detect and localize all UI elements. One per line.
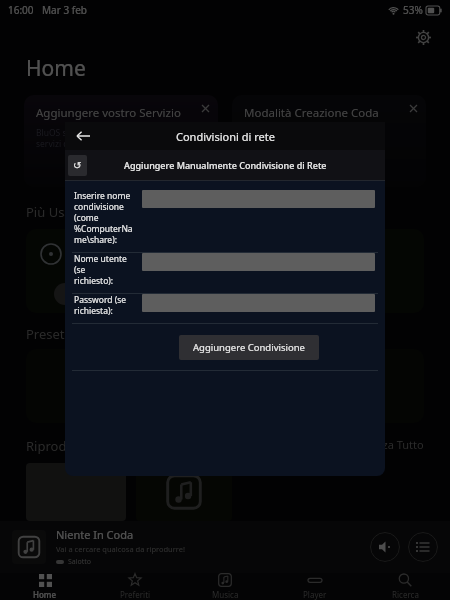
button[interactable]: Volume xyxy=(370,532,400,562)
button[interactable]: Queue xyxy=(408,532,438,562)
button[interactable]: Settings xyxy=(410,24,436,50)
button[interactable]: Preferiti xyxy=(90,573,180,600)
staticText: Salotto xyxy=(68,557,92,567)
staticText: Riprodotti di Recente xyxy=(26,437,155,455)
button[interactable]: Apri xyxy=(54,283,110,305)
staticText: Modalità Creazione Coda xyxy=(244,105,379,121)
staticText: Presets xyxy=(26,325,71,343)
staticText: 53% xyxy=(403,3,423,17)
staticText: Preferiti xyxy=(120,589,151,600)
staticText: Home xyxy=(26,54,86,83)
button[interactable]: Aggiungere Condivisione xyxy=(179,335,319,360)
staticText: Mar 3 feb xyxy=(42,3,87,17)
staticText: T I CO xyxy=(70,243,83,265)
staticText: Aggiungere Condivisione xyxy=(193,341,305,354)
staticText: Nome utente (se richiesto): xyxy=(74,253,140,286)
staticText: Apri xyxy=(72,287,92,301)
staticText: Vai a cercare qualcosa da riprodurre! xyxy=(56,544,186,554)
button[interactable]: Ricerca xyxy=(360,573,450,600)
staticText: 16:00 xyxy=(8,3,34,17)
staticText: Condivisioni di rete xyxy=(176,129,275,144)
button[interactable]: Modalità Creazione Coda xyxy=(232,95,426,187)
button[interactable] xyxy=(136,463,232,521)
staticText: ↺ xyxy=(73,160,82,172)
staticText: Player xyxy=(303,589,327,600)
button[interactable] xyxy=(26,463,126,521)
staticText: Crea code facilmente e riproduci xyxy=(244,127,328,149)
button[interactable]: T I CO xyxy=(26,229,424,313)
staticText: Ricerca xyxy=(392,589,419,600)
staticText: Inserire nome condivisione (come %Comput… xyxy=(74,190,140,245)
button[interactable]: Back xyxy=(71,124,95,148)
staticText: Più Usati xyxy=(26,203,80,221)
button[interactable]: Musica xyxy=(180,573,270,600)
button[interactable]: Aggiungere vostro Servizio Musi… xyxy=(24,95,218,187)
button[interactable]: Player xyxy=(270,573,360,600)
button[interactable]: Visualizza Tutto xyxy=(344,437,424,452)
staticText: Home xyxy=(33,589,57,600)
staticText: Aggiungere Manualmente Condivisione di R… xyxy=(124,159,327,171)
staticText: Niente In Coda xyxy=(56,527,134,542)
button[interactable]: Refresh xyxy=(68,155,87,176)
staticText: Aggiungere vostro Servizio Musi… xyxy=(36,105,194,121)
button[interactable]: Close xyxy=(406,101,420,115)
button[interactable]: Home xyxy=(0,573,90,600)
staticText: BluOS supporta moltissimi servizi di str… xyxy=(36,127,142,149)
staticText: Password (se richiesta): xyxy=(74,294,140,316)
button[interactable]: Close xyxy=(198,101,212,115)
staticText: Musica xyxy=(212,589,239,600)
